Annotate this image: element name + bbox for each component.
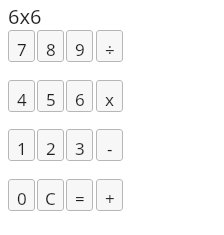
staticText: 2 <box>46 137 56 160</box>
staticText: 6x6 <box>8 3 42 30</box>
button[interactable]: 1 <box>8 129 35 161</box>
staticText: 8 <box>46 38 56 61</box>
button[interactable]: x <box>96 80 123 112</box>
button[interactable]: 7 <box>8 30 35 62</box>
staticText: 4 <box>17 88 27 111</box>
staticText: 9 <box>75 38 85 61</box>
button[interactable]: 5 <box>37 80 64 112</box>
button[interactable]: 3 <box>66 129 93 161</box>
staticText: 3 <box>75 137 85 160</box>
button[interactable]: 9 <box>66 30 93 62</box>
button[interactable]: - <box>96 129 123 161</box>
staticText: C <box>45 187 56 210</box>
button[interactable]: 0 <box>8 179 35 211</box>
staticText: + <box>105 187 115 210</box>
staticText: 5 <box>46 88 56 111</box>
staticText: x <box>105 88 114 111</box>
staticText: 1 <box>17 137 27 160</box>
button[interactable]: 8 <box>37 30 64 62</box>
button[interactable]: C <box>37 179 64 211</box>
staticText: 6 <box>75 88 85 111</box>
button[interactable]: 6 <box>66 80 93 112</box>
button[interactable]: 2 <box>37 129 64 161</box>
button[interactable]: = <box>66 179 93 211</box>
button[interactable]: ÷ <box>96 30 123 62</box>
staticText: = <box>75 187 85 210</box>
button[interactable]: + <box>96 179 123 211</box>
staticText: - <box>107 137 113 160</box>
staticText: 7 <box>17 38 27 61</box>
staticText: 0 <box>17 187 27 210</box>
staticText: ÷ <box>105 38 115 61</box>
button[interactable]: 4 <box>8 80 35 112</box>
